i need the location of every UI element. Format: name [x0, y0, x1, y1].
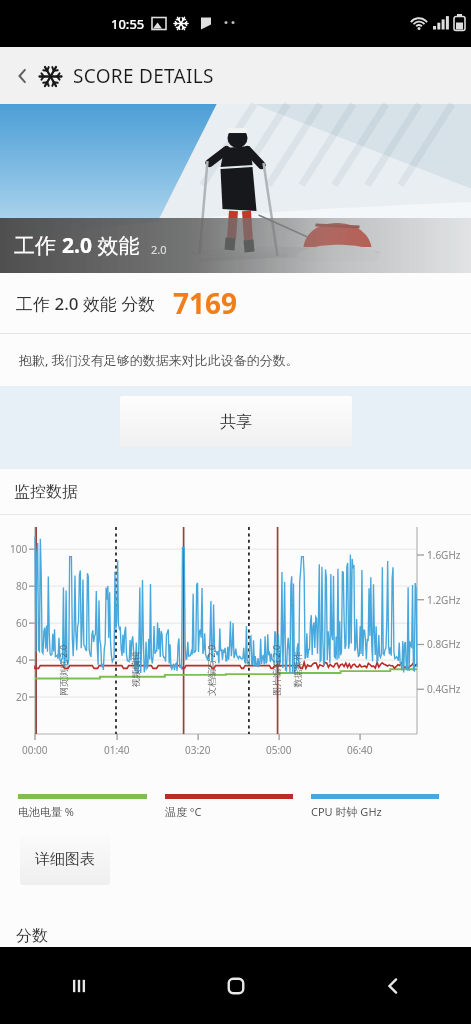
staticText: 7169: [173, 284, 238, 322]
staticText: 1.6GHz: [427, 548, 461, 562]
staticText: 00:00: [22, 743, 48, 757]
button[interactable]: 详细图表: [20, 834, 110, 885]
staticText: 文档编写 2.0: [205, 644, 217, 696]
staticText: 2.0: [62, 231, 92, 260]
staticText: 80: [16, 579, 28, 593]
staticText: 03:20: [185, 743, 211, 757]
staticText: 详细图表: [35, 850, 95, 869]
staticText: 网页浏览 2.0: [57, 644, 69, 696]
staticText: 抱歉, 我们没有足够的数据来对比此设备的分数。: [19, 351, 299, 369]
staticText: 01:40: [104, 743, 130, 757]
button[interactable]: 共享: [120, 396, 352, 447]
staticText: 电池电量 %: [18, 804, 75, 819]
staticText: 100: [10, 542, 28, 556]
staticText: 效能: [92, 231, 140, 260]
staticText: 温度 °C: [165, 804, 202, 819]
staticText: 2.0: [151, 242, 167, 257]
staticText: 40: [16, 653, 28, 667]
staticText: 监控数据: [14, 482, 78, 502]
staticText: 1.2GHz: [427, 593, 461, 607]
staticText: 60: [16, 616, 28, 630]
button[interactable]: Back: [6, 60, 38, 92]
staticText: 视频编辑: [129, 651, 140, 687]
staticText: 工作 2.0 效能 分数: [16, 292, 156, 315]
staticText: 工作: [14, 231, 62, 260]
staticText: 分数: [16, 926, 48, 946]
staticText: 06:40: [347, 743, 373, 757]
staticText: 10:55: [111, 15, 145, 33]
staticText: CPU 时钟 GHz: [311, 804, 382, 819]
staticText: 20: [16, 690, 28, 704]
button[interactable]: Home: [157, 947, 314, 1024]
staticText: 数据操作: [291, 651, 302, 687]
staticText: SCORE DETAILS: [73, 63, 214, 89]
button[interactable]: Back: [314, 947, 471, 1024]
staticText: 05:00: [266, 743, 292, 757]
button[interactable]: Recents: [0, 947, 157, 1024]
staticText: 0.8GHz: [427, 637, 461, 651]
staticText: 图片编辑 2.0: [270, 644, 282, 696]
staticText: 0.4GHz: [427, 682, 461, 696]
staticText: 共享: [220, 412, 252, 432]
